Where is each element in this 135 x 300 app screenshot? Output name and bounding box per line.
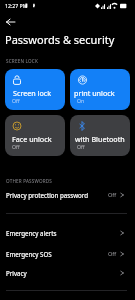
staticText: Screen lock — [13, 88, 52, 98]
staticText: Off — [108, 250, 117, 258]
staticText: Off — [108, 191, 117, 199]
staticText: 12:27 PM — [5, 2, 28, 9]
staticText: OTHER PASSWORDS — [6, 178, 53, 184]
button[interactable]: Face unlock — [5, 115, 65, 156]
button[interactable]: Privacy protection password — [0, 188, 135, 202]
button[interactable]: print unlock — [70, 69, 130, 110]
staticText: print unlock — [74, 88, 115, 98]
staticText: with Bluetooth — [75, 134, 125, 144]
staticText: Privacy — [6, 269, 27, 277]
button[interactable]: Emergency alerts — [0, 226, 135, 240]
staticText: Face unlock — [12, 134, 52, 144]
staticText: Off — [77, 143, 85, 150]
staticText: Off — [12, 143, 20, 150]
staticText: Emergency alerts — [6, 229, 57, 237]
button[interactable]: Privacy — [0, 266, 135, 280]
staticText: On — [77, 97, 85, 104]
staticText: Emergency SOS — [6, 250, 52, 258]
button[interactable]: Emergency SOS — [0, 247, 135, 261]
button[interactable]: Back — [4, 15, 17, 29]
staticText: Passwords & security — [5, 32, 115, 47]
button[interactable]: with Bluetooth — [70, 115, 130, 156]
staticText: Privacy protection password — [6, 191, 88, 199]
staticText: Off — [12, 97, 20, 104]
button[interactable]: Screen lock — [5, 69, 65, 110]
staticText: SCREEN LOCK — [6, 58, 38, 64]
